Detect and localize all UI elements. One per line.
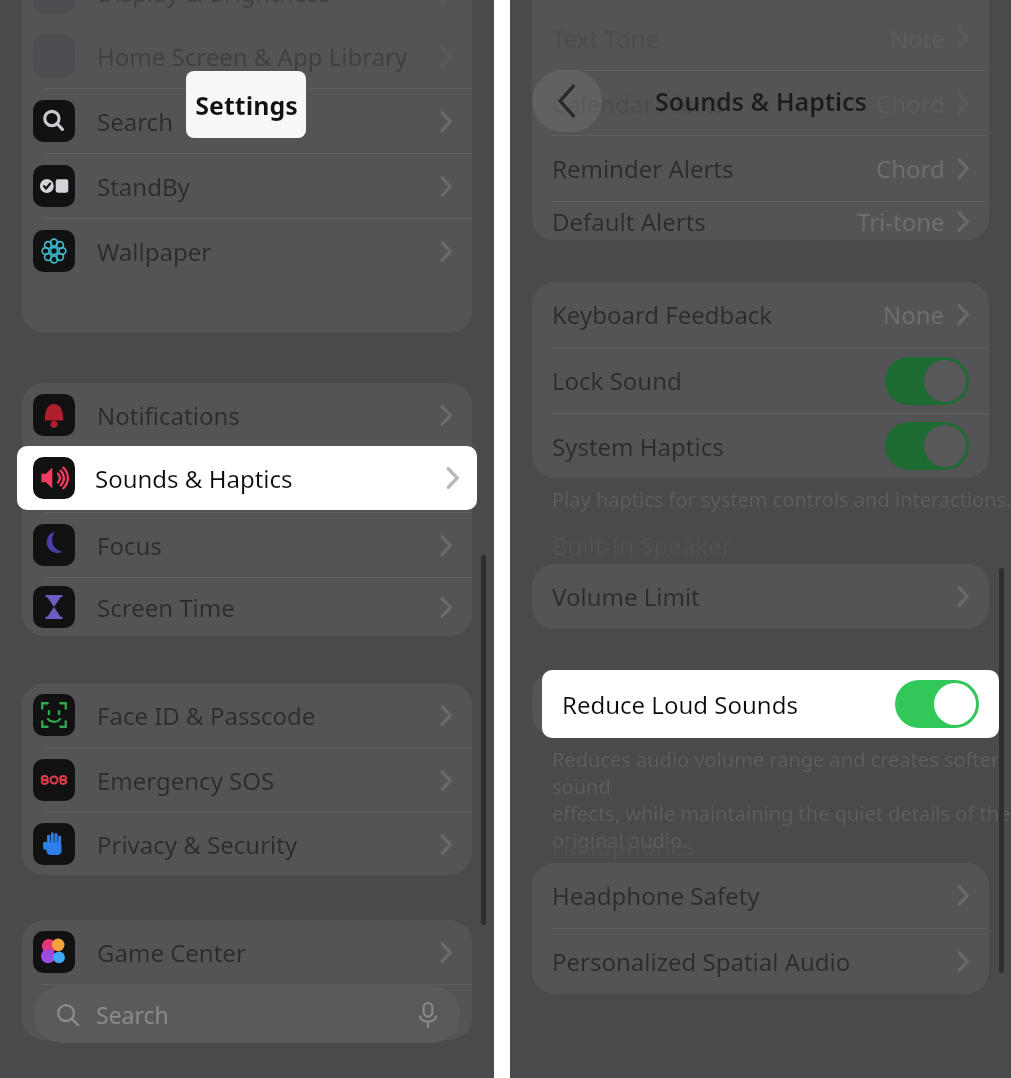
staticText: Settings <box>195 88 298 122</box>
staticText: Privacy & Security <box>97 828 298 861</box>
staticText: Emergency SOS <box>97 764 275 797</box>
button[interactable]: Default Alerts <box>532 202 989 240</box>
button[interactable]: Screen Time <box>22 578 472 636</box>
staticText: Keyboard Feedback <box>552 298 773 331</box>
staticText: StandBy <box>97 170 190 203</box>
staticText: Headphone Safety <box>552 879 760 912</box>
button[interactable]: Keyboard Feedback <box>532 282 989 347</box>
staticText: Volume Limit <box>552 580 700 613</box>
staticText: Wallpaper <box>97 235 212 268</box>
button[interactable]: Volume Limit <box>532 564 989 629</box>
staticText: Tri-tone <box>857 205 945 238</box>
button[interactable]: Notifications <box>22 383 472 447</box>
button[interactable]: Game Center <box>22 920 472 984</box>
button[interactable] <box>885 422 969 470</box>
staticText: Search <box>96 999 169 1030</box>
staticText: None <box>883 298 945 331</box>
staticText: Game Center <box>97 936 246 969</box>
staticText: Headphones <box>552 829 696 862</box>
staticText: Display & Brightness <box>97 0 331 9</box>
staticText: Lock Sound <box>552 364 682 397</box>
button[interactable]: Wallpaper <box>22 219 472 283</box>
staticText: Reminder Alerts <box>552 152 734 185</box>
button[interactable]: Reduce Loud Sounds <box>542 670 999 738</box>
button[interactable]: Back <box>532 70 602 132</box>
button[interactable]: Face ID & Passcode <box>22 683 472 747</box>
staticText: System Haptics <box>552 430 724 463</box>
button[interactable]: Headphone Safety <box>532 863 989 928</box>
staticText: Reduces audio volume range and creates s… <box>552 746 1011 854</box>
button[interactable]: Sounds & Haptics <box>17 446 477 510</box>
button[interactable]: Reminder Alerts <box>532 136 989 201</box>
staticText: Chord <box>876 152 945 185</box>
staticText: Default Alerts <box>552 205 706 238</box>
staticText: Focus <box>97 529 162 562</box>
button[interactable]: Search <box>34 986 460 1043</box>
button[interactable]: Personalized Spatial Audio <box>532 929 989 994</box>
staticText: Play haptics for system controls and int… <box>552 486 1011 513</box>
staticText: Personalized Spatial Audio <box>552 945 851 978</box>
staticText: Search <box>97 105 173 138</box>
button[interactable]: StandBy <box>22 154 472 218</box>
staticText: Sounds & Haptics <box>655 84 867 118</box>
staticText: Reduce Loud Sounds <box>562 688 798 721</box>
staticText: 87 <box>955 29 973 49</box>
button[interactable] <box>895 680 979 728</box>
button[interactable]: Search <box>22 89 472 153</box>
staticText: 2:58 <box>55 24 109 61</box>
staticText: Sounds & Haptics <box>95 462 293 495</box>
button[interactable]: Focus <box>22 513 472 577</box>
staticText: Calendar Alerts <box>552 87 725 120</box>
button[interactable]: System Haptics <box>532 414 989 478</box>
staticText: Home Screen & App Library <box>97 40 408 73</box>
staticText: Face ID & Passcode <box>97 699 316 732</box>
button[interactable] <box>885 357 969 405</box>
button[interactable]: Privacy & Security <box>22 813 472 875</box>
staticText: Note <box>890 22 945 55</box>
staticText: Notifications <box>97 399 240 432</box>
staticText: Screen Time <box>97 591 235 624</box>
button[interactable]: Emergency SOS <box>22 748 472 812</box>
button[interactable]: Lock Sound <box>532 348 989 413</box>
